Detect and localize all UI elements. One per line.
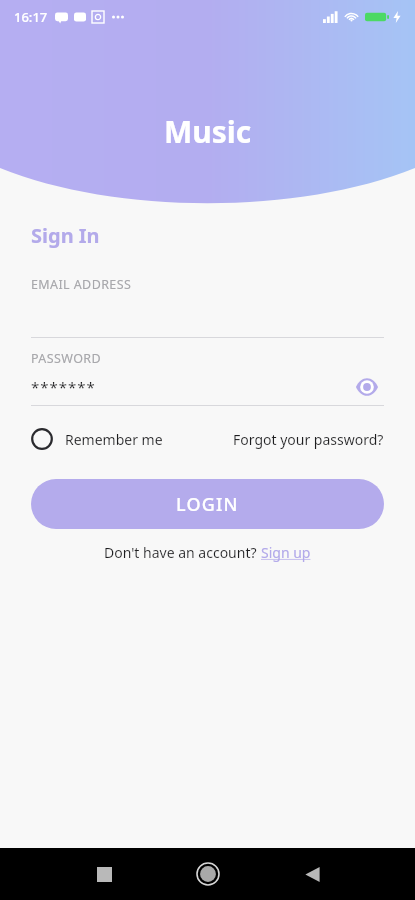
button[interactable]: Sign up bbox=[261, 543, 311, 562]
staticText: ******* bbox=[31, 377, 96, 397]
staticText: Sign In bbox=[31, 222, 100, 249]
button[interactable]: Forgot your password? bbox=[233, 430, 384, 449]
staticText: 16:17 bbox=[14, 8, 48, 26]
staticText: EMAIL ADDRESS bbox=[31, 276, 132, 293]
button[interactable]: Remember me bbox=[31, 428, 163, 450]
staticText: LOGIN bbox=[176, 492, 239, 517]
staticText: Sign up bbox=[261, 543, 311, 562]
button[interactable]: Home bbox=[186, 852, 230, 896]
button[interactable]: LOGIN bbox=[31, 479, 384, 529]
button[interactable]: Back bbox=[290, 852, 334, 896]
staticText: Forgot your password? bbox=[233, 430, 384, 449]
staticText: Don't have an account? bbox=[104, 543, 261, 562]
button[interactable]: ******* bbox=[31, 373, 384, 401]
staticText: Music bbox=[164, 111, 252, 152]
staticText: PASSWORD bbox=[31, 350, 102, 367]
button[interactable]: Show password bbox=[350, 373, 384, 401]
staticText: Remember me bbox=[65, 430, 163, 449]
button[interactable]: Recent apps bbox=[82, 852, 126, 896]
